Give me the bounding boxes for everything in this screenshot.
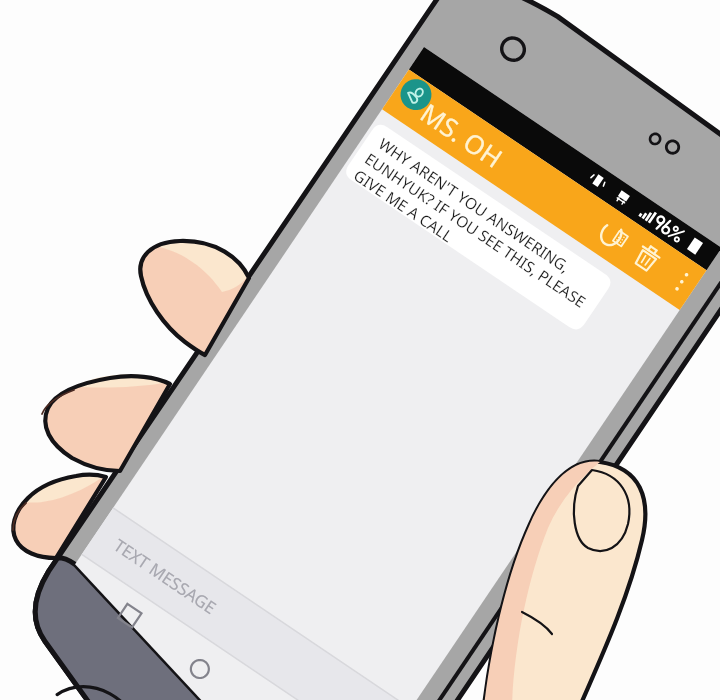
button[interactable] — [0, 0, 720, 700]
